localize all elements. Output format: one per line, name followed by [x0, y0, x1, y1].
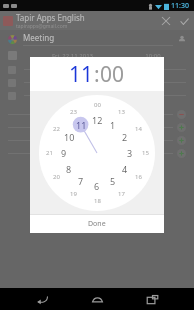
- staticText: Done: [88, 219, 106, 229]
- staticText: tapirapps@gmail.com: [16, 23, 68, 30]
- staticText: 6: [94, 180, 100, 192]
- staticText: 8: [66, 163, 72, 175]
- button[interactable]: 11: [69, 60, 94, 89]
- staticText: 10:00: [120, 52, 186, 60]
- staticText: 20: [53, 173, 60, 181]
- staticText: 15: [142, 149, 149, 157]
- staticText: 11:30: [171, 1, 189, 11]
- staticText: 4: [122, 163, 128, 175]
- staticText: 9: [61, 147, 67, 159]
- staticText: 22: [53, 125, 60, 133]
- staticText: Tapir Apps English: [16, 12, 85, 23]
- button[interactable]: 00: [100, 60, 125, 89]
- staticText: 11: [69, 60, 94, 89]
- staticText: 10: [64, 131, 75, 143]
- staticText: 7: [78, 175, 84, 187]
- button[interactable]: Save: [177, 14, 191, 28]
- staticText: 00: [94, 101, 101, 109]
- staticText: 00: [100, 60, 125, 89]
- staticText: 12: [92, 114, 103, 126]
- staticText: 21: [46, 149, 53, 157]
- button[interactable]: Recents: [139, 288, 165, 310]
- button[interactable]: Home: [84, 288, 110, 310]
- staticText: 13: [118, 108, 125, 116]
- button[interactable]: Back: [29, 288, 55, 310]
- staticText: 14: [135, 125, 142, 133]
- staticText: 19: [70, 190, 77, 198]
- staticText: 1: [110, 119, 116, 131]
- button[interactable]: Cancel: [159, 14, 173, 28]
- staticText: 3: [127, 147, 133, 159]
- staticText: Fri, 22.11.2013: [25, 52, 120, 60]
- staticText: 2: [122, 131, 128, 143]
- staticText: 18: [94, 197, 101, 205]
- staticText: 16: [135, 173, 142, 181]
- staticText: 5: [110, 175, 116, 187]
- staticText: 17: [118, 190, 125, 198]
- staticText: 11: [76, 119, 87, 131]
- staticText: Meeting: [23, 32, 55, 43]
- button[interactable]: Done: [30, 215, 164, 233]
- staticText: 23: [70, 108, 77, 116]
- staticText: :: [94, 60, 100, 89]
